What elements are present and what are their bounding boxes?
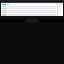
button[interactable] [1,5,57,7]
button[interactable] [1,11,57,13]
button[interactable] [1,13,57,15]
button[interactable]: Window title bar [0,0,64,18]
button[interactable] [1,7,57,9]
button[interactable] [1,15,57,16]
button[interactable] [1,9,57,11]
button[interactable] [58,3,63,16]
